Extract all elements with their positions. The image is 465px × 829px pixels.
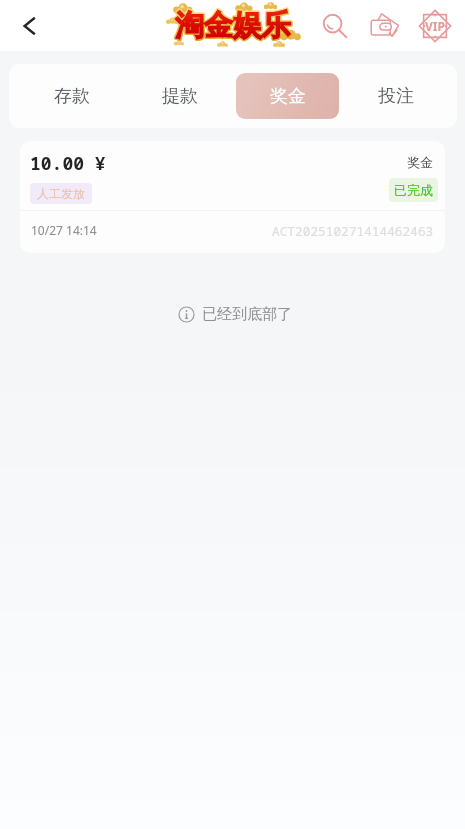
button[interactable]: Wallet	[366, 7, 404, 45]
staticText: 奖金	[407, 154, 433, 170]
staticText: 已完成	[394, 182, 433, 198]
staticText: 人工发放	[37, 186, 85, 201]
button[interactable]: Search	[316, 7, 354, 45]
staticText: 淘金娱乐	[175, 7, 291, 44]
button[interactable]: 提款	[128, 73, 231, 119]
button[interactable]: 投注	[344, 73, 447, 119]
staticText: 已经到底部了	[202, 305, 292, 324]
button[interactable]: 10.00 ¥	[20, 141, 445, 253]
button[interactable]: Back	[12, 8, 48, 44]
staticText: 10.00 ¥	[30, 151, 106, 176]
button[interactable]: VIP	[416, 7, 454, 45]
staticText: 投注	[378, 85, 414, 108]
staticText: 存款	[54, 85, 90, 108]
button[interactable]: 奖金	[236, 73, 339, 119]
staticText: ACT202510271414462463	[272, 222, 434, 239]
button[interactable]: 存款	[21, 73, 123, 119]
staticText: 10/27 14:14	[31, 222, 97, 238]
staticText: 淘金娱乐	[176, 8, 292, 45]
staticText: 淘金娱乐	[175, 7, 291, 44]
staticText: 奖金	[270, 85, 306, 108]
staticText: 提款	[162, 85, 198, 108]
staticText: VIP	[425, 18, 445, 34]
